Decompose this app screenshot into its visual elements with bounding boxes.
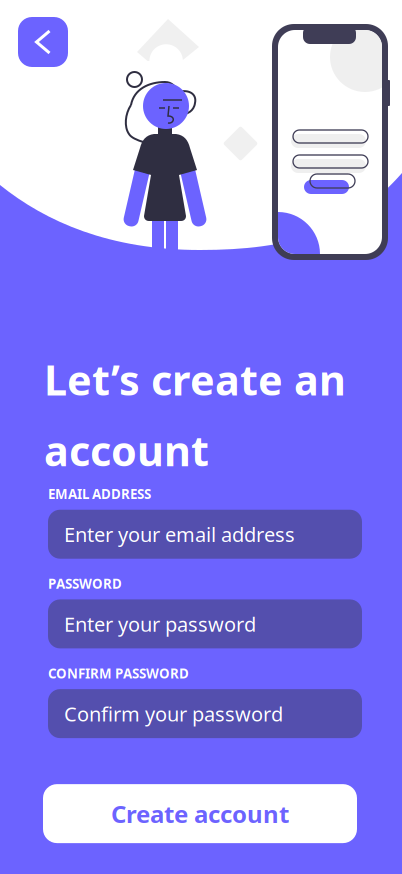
staticText: EMAIL ADDRESS	[48, 485, 151, 503]
staticText: Enter your email address	[64, 521, 295, 547]
button[interactable]: Create account	[43, 784, 357, 843]
staticText: Create account	[111, 798, 289, 830]
staticText: Let’s create an	[44, 352, 346, 407]
staticText: PASSWORD	[48, 575, 122, 592]
button[interactable]: Back	[18, 17, 68, 67]
staticText: Enter your password	[64, 611, 256, 637]
button[interactable]: Confirm your password	[48, 689, 362, 738]
staticText: account	[44, 423, 209, 478]
button[interactable]: Enter your password	[48, 599, 362, 648]
staticText: CONFIRM PASSWORD	[48, 664, 189, 682]
button[interactable]: Enter your email address	[48, 510, 362, 559]
staticText: Confirm your password	[64, 700, 283, 727]
